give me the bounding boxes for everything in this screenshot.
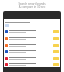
staticText: Search smart brands & compare in 30 sec — [18, 2, 46, 9]
button[interactable] — [4, 28, 60, 35]
button[interactable] — [4, 48, 60, 55]
button[interactable] — [4, 42, 60, 49]
button[interactable] — [4, 61, 60, 67]
button[interactable] — [4, 55, 60, 62]
button[interactable] — [4, 35, 60, 42]
